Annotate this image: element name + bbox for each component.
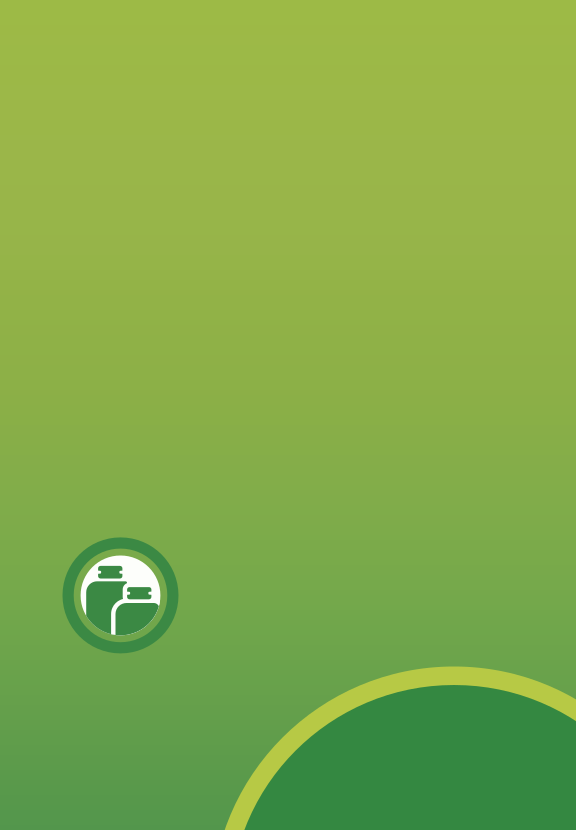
button[interactable]: Brand logo xyxy=(62,537,178,653)
